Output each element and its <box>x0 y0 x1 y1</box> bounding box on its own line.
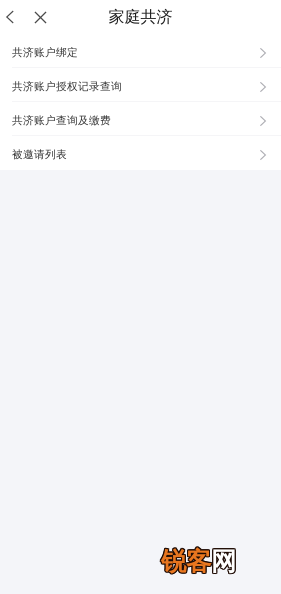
staticText: 锐 <box>161 546 186 577</box>
staticText: 客 <box>186 547 211 578</box>
staticText: 客 <box>187 546 212 577</box>
staticText: 被邀请列表 <box>12 148 67 161</box>
staticText: 锐 <box>162 547 187 578</box>
staticText: 网 <box>211 546 236 577</box>
staticText: 锐 <box>161 547 186 578</box>
staticText: 锐 <box>161 545 186 576</box>
staticText: 客 <box>185 545 210 576</box>
staticText: 客 <box>186 546 211 577</box>
button[interactable]: Close <box>18 0 51 34</box>
staticText: 客 <box>187 545 212 576</box>
staticText: 网 <box>210 547 235 578</box>
staticText: 客 <box>187 547 212 578</box>
staticText: 共济账户授权记录查询 <box>12 80 122 93</box>
staticText: 家庭共济 <box>108 7 172 27</box>
staticText: 网 <box>211 545 236 576</box>
staticText: 网 <box>210 546 235 577</box>
staticText: 锐 <box>160 547 185 578</box>
staticText: 网 <box>211 547 236 578</box>
staticText: 锐 <box>160 545 185 576</box>
button[interactable]: 共济账户查询及缴费 <box>0 102 281 136</box>
staticText: 锐 <box>162 545 187 576</box>
staticText: 客 <box>185 547 210 578</box>
staticText: 网 <box>210 545 235 576</box>
staticText: 客 <box>185 546 210 577</box>
staticText: 共济账户查询及缴费 <box>12 114 111 127</box>
button[interactable]: 共济账户绑定 <box>0 34 281 68</box>
button[interactable]: 被邀请列表 <box>0 136 281 170</box>
staticText: 共济账户绑定 <box>12 46 78 59</box>
button[interactable]: Back <box>0 0 18 34</box>
button[interactable]: 共济账户授权记录查询 <box>0 68 281 102</box>
staticText: 客 <box>186 545 211 576</box>
staticText: 网 <box>212 546 237 577</box>
staticText: 网 <box>212 547 237 578</box>
staticText: 网 <box>212 545 237 576</box>
staticText: 锐 <box>160 546 185 577</box>
staticText: 锐 <box>162 546 187 577</box>
